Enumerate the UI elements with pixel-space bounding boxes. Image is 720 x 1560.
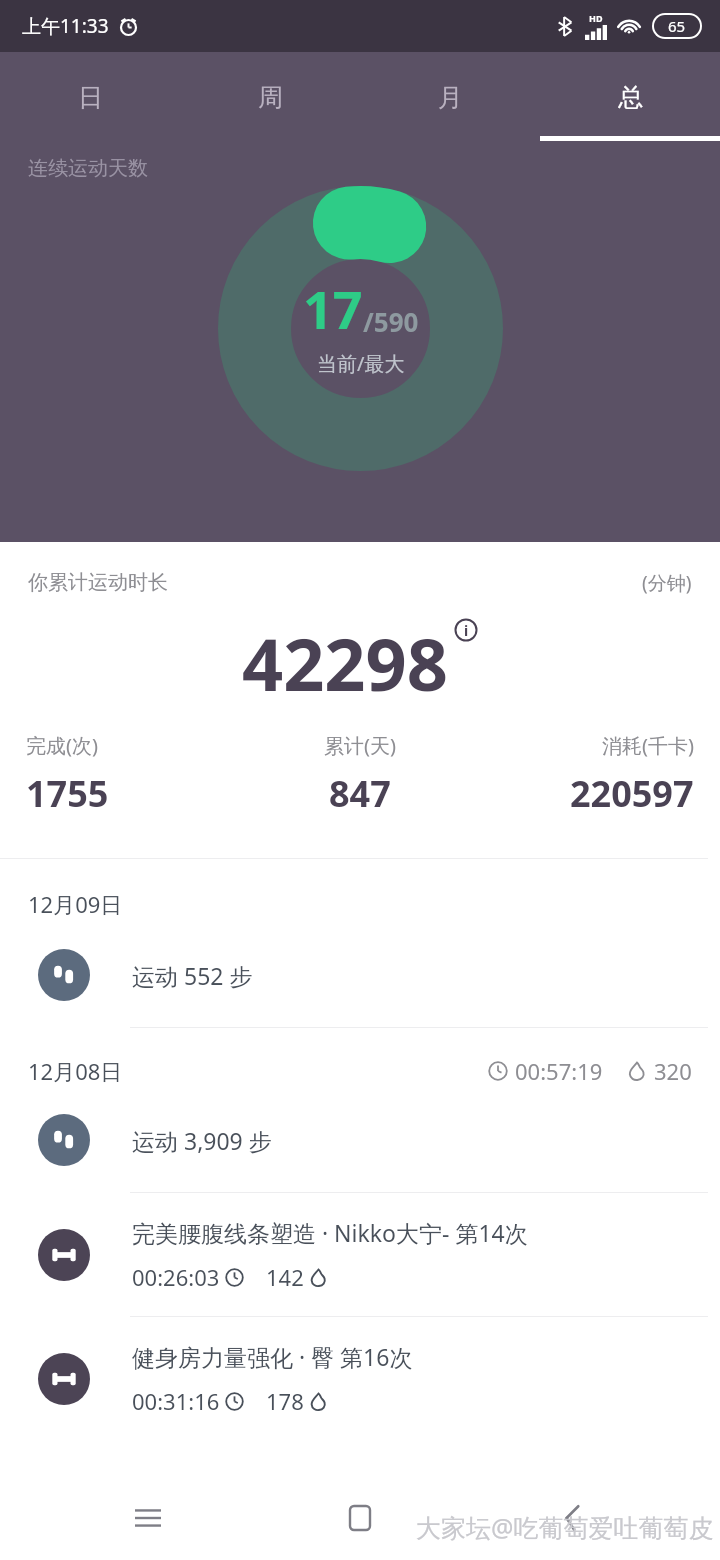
staticText: 178 [266, 1386, 304, 1416]
staticText: 完成(次) [26, 732, 98, 759]
staticText: 65 [668, 16, 686, 36]
staticText: (分钟) [642, 570, 692, 596]
staticText: 月 [438, 82, 463, 113]
staticText: 847 [329, 769, 391, 818]
staticText: 00:26:03 [132, 1262, 220, 1292]
button[interactable]: 返回 [544, 1490, 600, 1546]
staticText: 12月09日 [28, 889, 123, 919]
staticText: 00:31:16 [132, 1386, 220, 1416]
staticText: 当前/最大 [317, 350, 405, 377]
staticText: 累计(天) [324, 732, 396, 759]
staticText: 42298 [242, 614, 448, 712]
staticText: 17 [303, 273, 363, 344]
staticText: i [464, 621, 469, 640]
staticText: 消耗(千卡) [602, 732, 694, 759]
button[interactable]: 周 [180, 52, 360, 142]
staticText: 健身房力量强化 · 臀 第16次 [132, 1341, 413, 1372]
staticText: 142 [266, 1262, 304, 1292]
button[interactable]: 运动 552 步 [0, 949, 720, 1001]
staticText: 上午11:33 [22, 13, 109, 39]
staticText: 12月08日 [28, 1056, 123, 1086]
button[interactable]: 健身房力量强化 · 臀 第16次 [0, 1317, 720, 1440]
button[interactable]: 总 [540, 52, 720, 142]
staticText: /590 [363, 304, 419, 339]
staticText: 总 [618, 82, 643, 113]
button[interactable]: 完美腰腹线条塑造 · Nikko大宁- 第14次 [0, 1193, 720, 1316]
staticText: 你累计运动时长 [28, 570, 168, 595]
staticText: 完美腰腹线条塑造 · Nikko大宁- 第14次 [132, 1217, 528, 1248]
staticText: HD [589, 12, 603, 24]
button[interactable]: 主页 [332, 1490, 388, 1546]
staticText: 运动 552 步 [132, 960, 253, 991]
staticText: 运动 3,909 步 [132, 1125, 272, 1156]
button[interactable]: 月 [360, 52, 540, 142]
button[interactable]: 日 [0, 52, 180, 142]
staticText: 1755 [26, 769, 109, 818]
staticText: 320 [654, 1056, 692, 1086]
button[interactable]: 运动 3,909 步 [0, 1114, 720, 1166]
button[interactable]: 最近任务 [120, 1490, 176, 1546]
staticText: 大家坛@吃葡萄爱吐葡萄皮 [416, 1510, 714, 1544]
button[interactable]: 信息 [454, 618, 478, 642]
staticText: 220597 [570, 769, 694, 818]
staticText: 日 [78, 82, 103, 113]
staticText: 连续运动天数 [28, 156, 148, 181]
staticText: 周 [258, 82, 283, 113]
staticText: 00:57:19 [515, 1056, 603, 1086]
